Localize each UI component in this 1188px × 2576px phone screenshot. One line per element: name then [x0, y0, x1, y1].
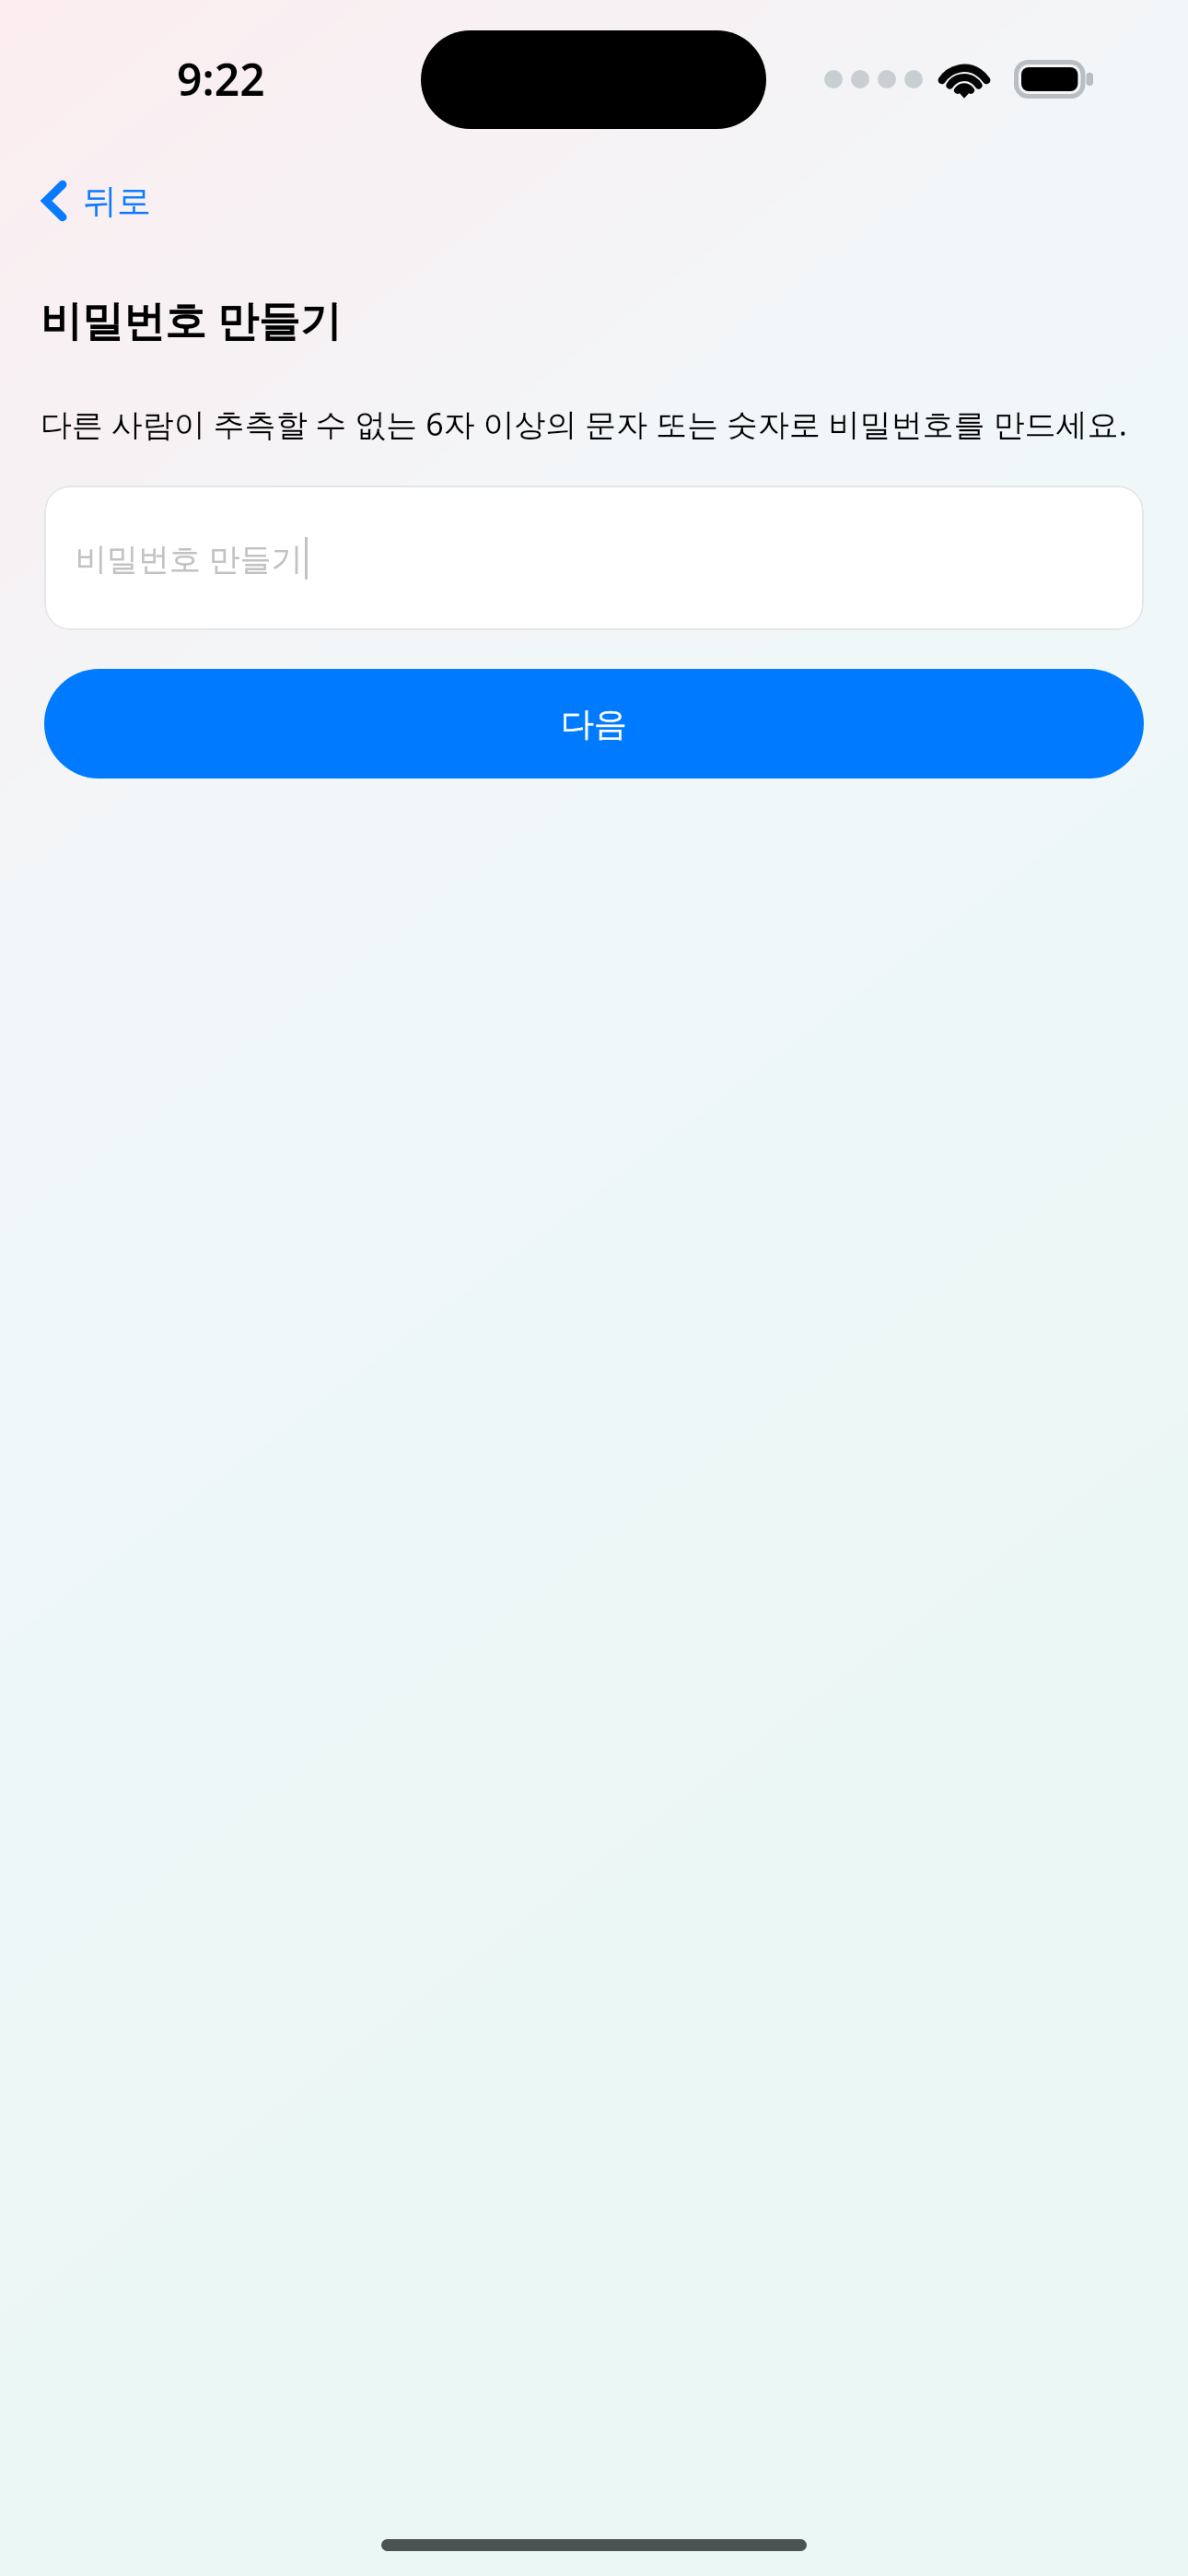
- staticText: 다른 사람이 추측할 수 없는 6자 이상의 문자 또는 숫자로 비밀번호를 만…: [41, 403, 1127, 445]
- button[interactable]: 비밀번호 만들기: [44, 486, 1144, 630]
- staticText: 비밀번호 만들기: [76, 537, 303, 580]
- button[interactable]: 뒤로: [31, 171, 160, 230]
- staticText: 9:22: [177, 49, 265, 109]
- staticText: 다음: [561, 703, 627, 744]
- button[interactable]: 다음: [44, 669, 1144, 779]
- staticText: 뒤로: [83, 180, 151, 223]
- staticText: 비밀번호 만들기: [41, 291, 342, 347]
